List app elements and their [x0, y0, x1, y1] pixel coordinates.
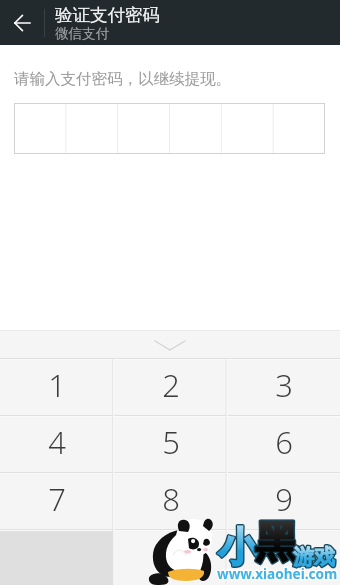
button[interactable]: 8	[114, 473, 227, 530]
button[interactable]: 1	[0, 359, 114, 416]
button[interactable]: Blank	[0, 530, 114, 585]
button[interactable]: Password digit 1	[14, 103, 65, 154]
button[interactable]: Back	[0, 0, 44, 45]
button[interactable]: Hide keyboard	[140, 330, 200, 359]
button[interactable]: Password digit 5	[221, 103, 273, 154]
staticText: 黑	[255, 516, 298, 570]
staticText: 7	[48, 478, 66, 520]
staticText: 0	[162, 534, 180, 576]
button[interactable]: Password digit 2	[65, 103, 117, 154]
staticText: 6	[275, 421, 293, 463]
button[interactable]: Password digit 4	[169, 103, 221, 154]
staticText: 8	[162, 478, 180, 520]
staticText: 游戏	[293, 544, 335, 570]
button[interactable]: 9	[227, 473, 340, 530]
button[interactable]: 7	[0, 473, 114, 530]
button[interactable]: 3	[227, 359, 340, 416]
button[interactable]: 4	[0, 416, 114, 473]
button[interactable]: Password digit 6	[273, 103, 325, 154]
button[interactable]: 0	[114, 530, 227, 585]
staticText: 9	[275, 478, 293, 520]
staticText: 2	[162, 364, 180, 406]
button[interactable]: Delete	[227, 530, 340, 585]
staticText: 小	[218, 522, 258, 572]
button[interactable]: 5	[114, 416, 227, 473]
staticText: 1	[48, 364, 66, 406]
staticText: 3	[275, 364, 293, 406]
staticText: 请输入支付密码，以继续提现。	[14, 69, 231, 89]
staticText: www.xiaohei.com	[217, 564, 338, 583]
staticText: 验证支付密码	[55, 4, 160, 26]
staticText: 黑	[255, 516, 298, 570]
button[interactable]: 6	[227, 416, 340, 473]
staticText: 微信支付	[55, 25, 109, 42]
staticText: 4	[48, 421, 66, 463]
button[interactable]: 2	[114, 359, 227, 416]
button[interactable]: Password digit 3	[117, 103, 169, 154]
staticText: www.xiaohei.com	[217, 564, 338, 583]
staticText: 小	[218, 522, 258, 572]
staticText: 5	[162, 421, 180, 463]
staticText: 游戏	[293, 544, 335, 570]
